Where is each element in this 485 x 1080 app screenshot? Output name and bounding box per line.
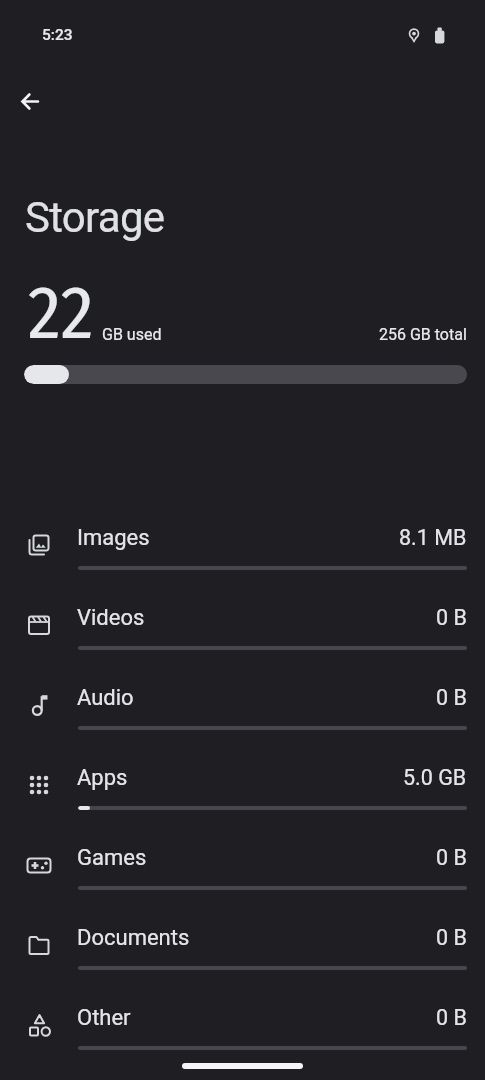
staticText: 0 B — [436, 1005, 467, 1030]
staticText: Apps — [77, 765, 128, 791]
button[interactable] — [8, 79, 52, 123]
button[interactable]: Other — [0, 987, 485, 1067]
staticText: Audio — [77, 685, 134, 711]
staticText: Images — [77, 525, 150, 551]
staticText: GB used — [102, 325, 162, 344]
staticText: 0 B — [436, 845, 467, 870]
staticText: Storage — [25, 193, 165, 242]
staticText: Videos — [77, 605, 145, 631]
staticText: 256 GB total — [379, 325, 467, 344]
button[interactable]: Documents — [0, 907, 485, 987]
staticText: 0 B — [436, 685, 467, 710]
staticText: 0 B — [436, 925, 467, 950]
staticText: Other — [77, 1005, 131, 1031]
staticText: 0 B — [436, 605, 467, 630]
button[interactable]: Videos — [0, 587, 485, 667]
staticText: 22 — [28, 269, 94, 358]
button[interactable]: Games — [0, 827, 485, 907]
staticText: Documents — [77, 925, 190, 951]
staticText: 5.0 GB — [403, 765, 467, 790]
button[interactable]: Apps — [0, 747, 485, 827]
staticText: 5:23 — [42, 26, 73, 44]
staticText: Games — [77, 845, 147, 871]
staticText: 8.1 MB — [399, 525, 467, 550]
button[interactable]: Images — [0, 507, 485, 587]
button[interactable]: Audio — [0, 667, 485, 747]
